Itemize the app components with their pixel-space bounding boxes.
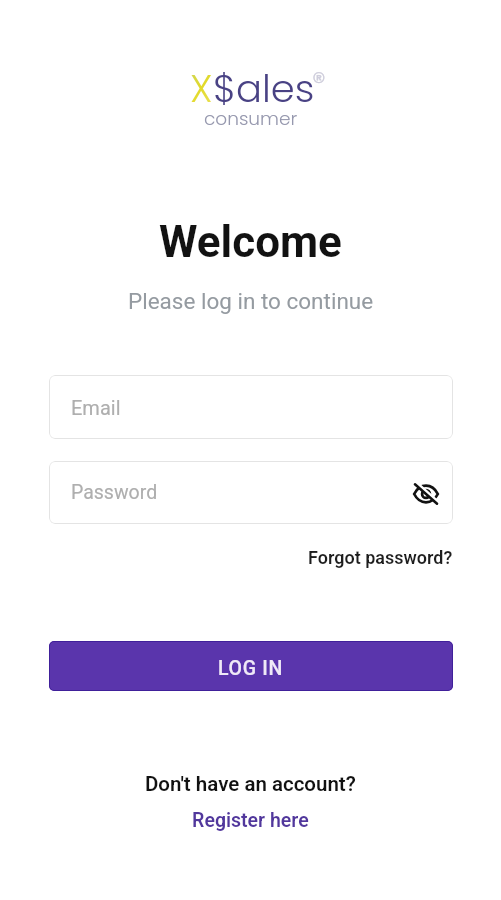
staticText: Don't have an account? [145, 772, 356, 796]
button[interactable]: Register here [182, 803, 319, 838]
staticText: ® [312, 63, 326, 101]
staticText: consumer [204, 106, 298, 132]
staticText: Please log in to continue [128, 288, 374, 314]
staticText: X [190, 62, 213, 116]
button[interactable]: Show password [407, 475, 445, 513]
staticText: Forgot password? [308, 547, 453, 568]
staticText: $ales [213, 62, 315, 116]
button[interactable]: Forgot password? [306, 541, 455, 574]
staticText: LOG IN [218, 657, 284, 680]
button[interactable]: Password [49, 461, 453, 524]
staticText: Email [71, 396, 121, 419]
staticText: Register here [192, 809, 309, 832]
staticText: Welcome [159, 216, 342, 268]
button[interactable]: Email [49, 375, 453, 439]
staticText: Password [71, 481, 158, 504]
button[interactable]: LOG IN [49, 641, 453, 691]
